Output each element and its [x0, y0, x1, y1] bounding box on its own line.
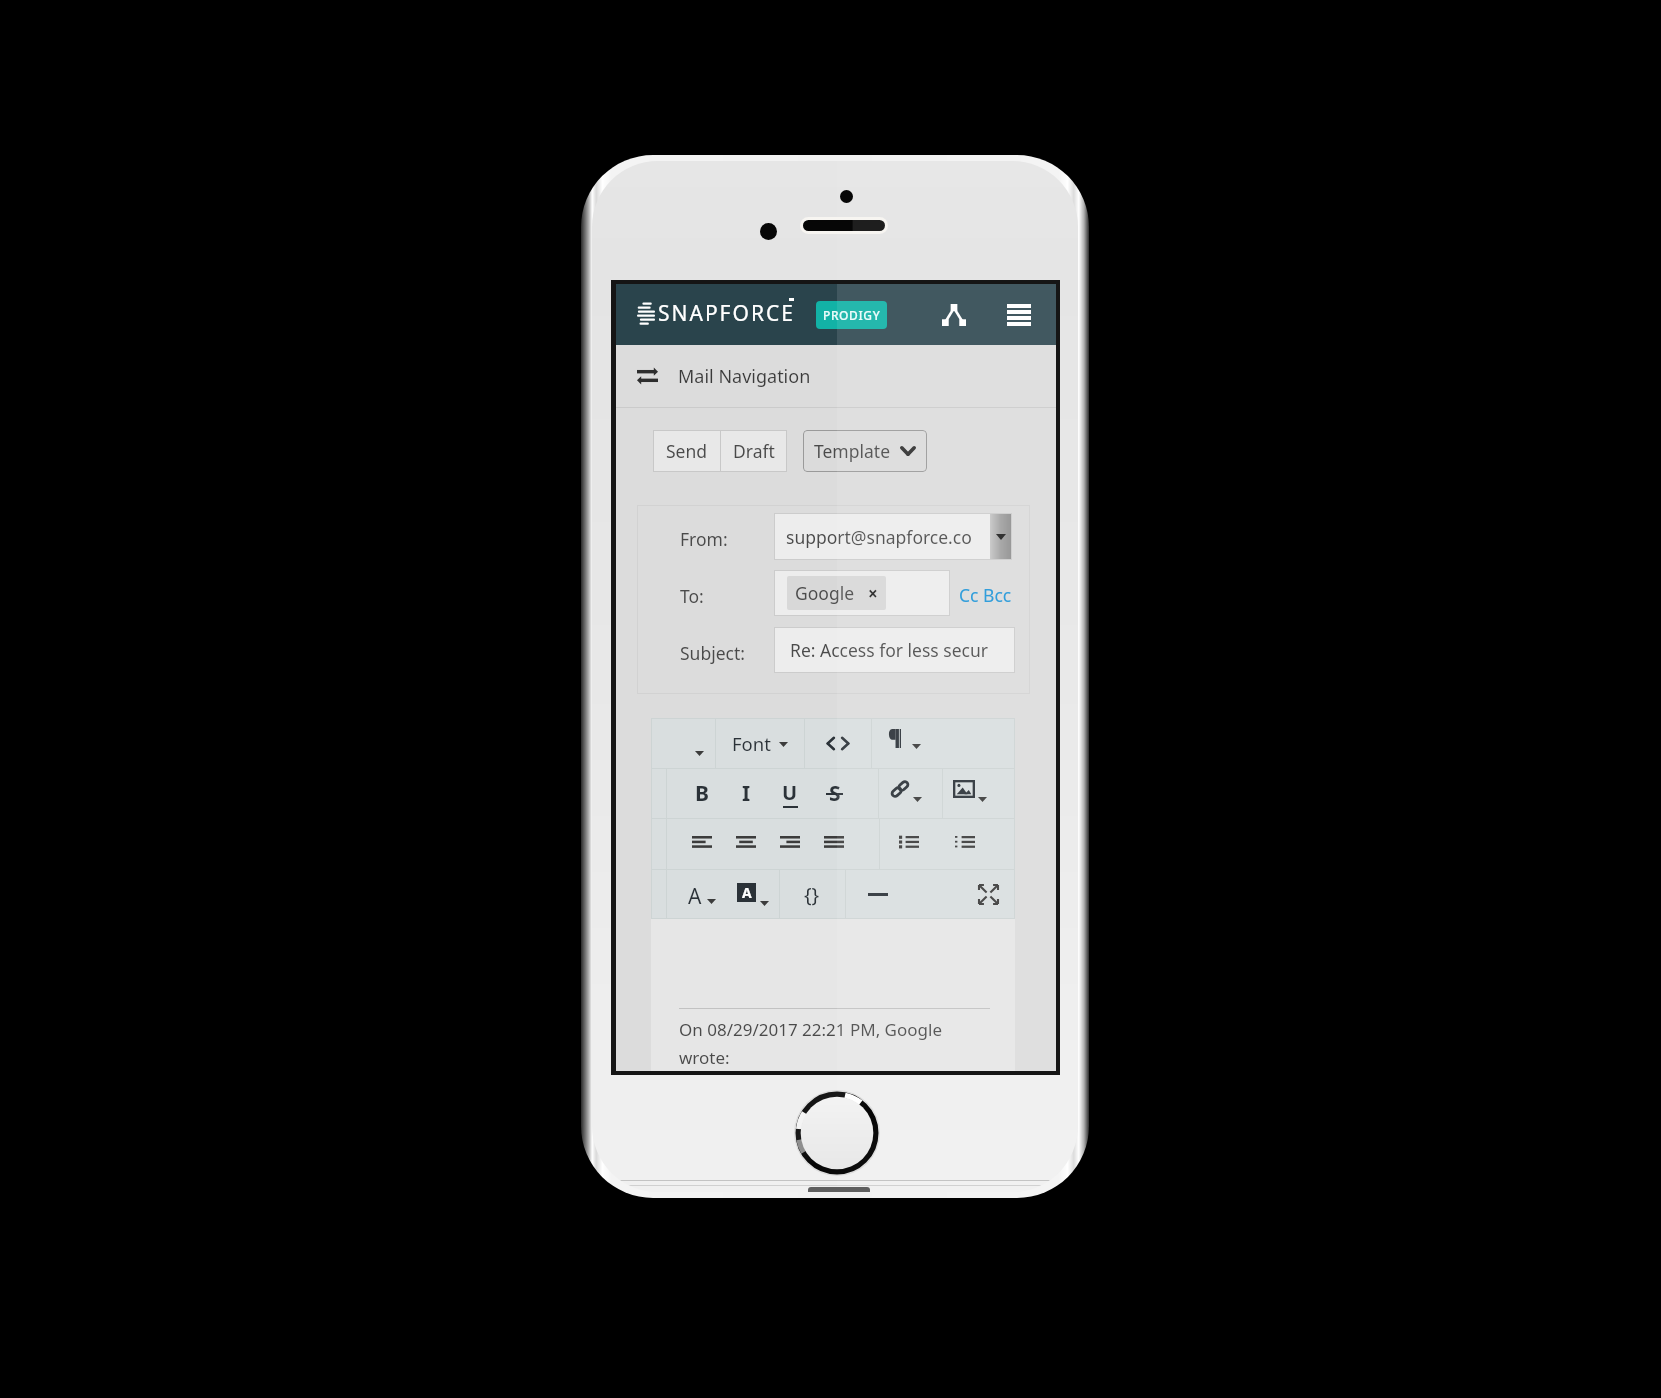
- staticText: Subject:: [680, 641, 745, 665]
- button[interactable]: Paragraph: [871, 718, 1015, 768]
- button[interactable]: Numbered list: [940, 818, 990, 869]
- button[interactable]: Template: [803, 430, 927, 472]
- staticText: S: [829, 779, 841, 808]
- button[interactable]: Align center: [724, 818, 768, 869]
- button[interactable]: Fullscreen: [963, 869, 1013, 919]
- staticText: PRODIGY: [823, 307, 881, 323]
- button[interactable]: Mail Navigation: [616, 345, 1056, 407]
- button[interactable]: Insert image: [948, 768, 998, 818]
- staticText: support@snapforce.co: [786, 525, 990, 549]
- staticText: I: [742, 779, 751, 808]
- button[interactable]: Google: [774, 570, 950, 616]
- button[interactable]: Italic: [724, 768, 768, 818]
- button[interactable]: Cc Bcc: [959, 583, 1012, 607]
- button[interactable]: Horizontal rule: [845, 869, 911, 919]
- button[interactable]: Source code: [804, 718, 871, 768]
- staticText: Mail Navigation: [678, 364, 811, 389]
- staticText: wrote:: [679, 1046, 730, 1069]
- button[interactable]: Align left: [680, 818, 724, 869]
- button[interactable]: Google: [787, 576, 886, 610]
- button[interactable]: SNAPFORCE: [634, 292, 804, 337]
- button[interactable]: Bold: [680, 768, 724, 818]
- button[interactable]: Code block: [779, 869, 845, 919]
- button[interactable]: Bulleted list: [884, 818, 934, 869]
- staticText: To:: [680, 584, 704, 608]
- button[interactable]: support@snapforce.co: [774, 513, 1012, 560]
- button[interactable]: Menu: [995, 294, 1043, 336]
- button[interactable]: Insert link: [884, 768, 934, 818]
- staticText: SNAPFORCE: [658, 299, 795, 328]
- button[interactable]: PRODIGY: [816, 301, 887, 329]
- button[interactable]: Underline: [768, 768, 812, 818]
- staticText: Font: [732, 731, 771, 756]
- button[interactable]: Strikethrough: [812, 768, 856, 818]
- button[interactable]: Draft: [721, 430, 787, 472]
- staticText: From:: [680, 527, 728, 551]
- staticText: Template: [814, 439, 891, 463]
- staticText: Send: [666, 439, 708, 463]
- button[interactable]: Font: [715, 718, 804, 768]
- staticText: A: [742, 883, 752, 902]
- button[interactable]: On 08/29/2017 22:21 PM, Google: [651, 919, 1015, 1071]
- button[interactable]: Align right: [768, 818, 812, 869]
- button[interactable]: Highlight colour: [730, 869, 780, 919]
- button[interactable]: Re: Access for less secur: [774, 627, 1015, 673]
- staticText: A: [688, 882, 702, 911]
- staticText: Google: [795, 581, 855, 605]
- staticText: Draft: [733, 439, 775, 463]
- staticText: ×: [868, 582, 878, 605]
- button[interactable]: Justify: [812, 818, 856, 869]
- staticText: {}: [804, 881, 820, 908]
- button[interactable]: Style: [651, 718, 715, 768]
- staticText: Re: Access for less secur: [790, 638, 988, 662]
- button[interactable]: Send: [653, 430, 720, 472]
- staticText: B: [695, 779, 709, 808]
- staticText: Cc Bcc: [959, 583, 1012, 607]
- staticText: U: [782, 779, 798, 806]
- staticText: On 08/29/2017 22:21 PM, Google: [679, 1018, 942, 1041]
- button[interactable]: Sitemap: [930, 294, 978, 336]
- button[interactable]: Text colour: [680, 869, 730, 919]
